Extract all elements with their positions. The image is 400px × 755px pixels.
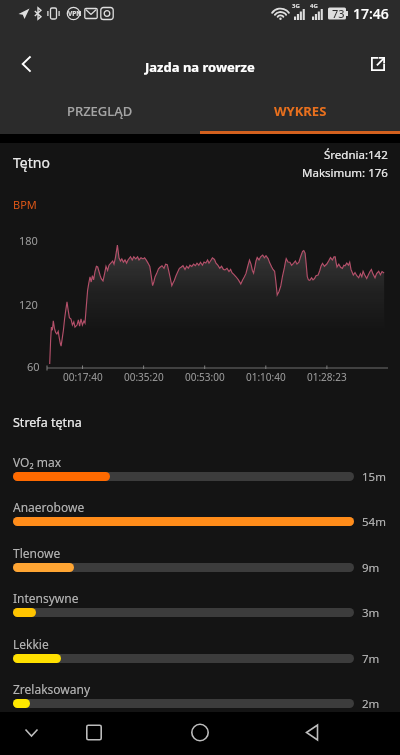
button[interactable]: WYKRES (200, 91, 400, 131)
button[interactable]: Lekkie (0, 636, 400, 680)
staticText: 180 (19, 233, 38, 248)
button[interactable]: Home (178, 712, 223, 755)
button[interactable]: Share (356, 42, 400, 86)
staticText: PRZEGLĄD (67, 102, 133, 120)
staticText: WYKRES (274, 102, 327, 120)
staticText: 7m (362, 651, 380, 667)
staticText: 4G (310, 2, 318, 10)
button[interactable]: Back (4, 42, 48, 86)
button[interactable]: VO₂ max (0, 454, 400, 498)
staticText: 73 (332, 6, 345, 21)
staticText: BPM (13, 197, 37, 212)
button[interactable]: Recent apps (71, 712, 116, 755)
staticText: 54m (362, 514, 386, 530)
staticText: 3m (362, 605, 380, 621)
staticText: 15m (362, 469, 386, 485)
staticText: 2m (362, 696, 380, 712)
staticText: VO₂ max (13, 454, 62, 470)
staticText: 00:17:40 (63, 370, 103, 384)
button[interactable]: Tlenowe (0, 545, 400, 589)
staticText: 9m (362, 560, 380, 576)
staticText: Maksimum: 176 (302, 165, 388, 181)
staticText: VPN (68, 9, 82, 18)
staticText: 01:28:23 (307, 370, 347, 384)
staticText: 120 (19, 297, 38, 312)
staticText: Średnia:142 (324, 147, 388, 163)
staticText: 00:35:20 (124, 370, 164, 384)
staticText: Jazda na rowerze (145, 58, 255, 76)
staticText: 17:46 (353, 4, 389, 23)
staticText: 3G (292, 2, 300, 10)
button[interactable]: PRZEGLĄD (0, 91, 200, 131)
staticText: Intensywne (13, 590, 79, 606)
staticText: Anaerobowe (13, 499, 85, 515)
button[interactable]: Intensywne (0, 590, 400, 634)
button[interactable]: Back (290, 712, 335, 755)
staticText: 00:53:00 (185, 370, 225, 384)
button[interactable]: Zrelaksowany (0, 681, 400, 725)
staticText: Tlenowe (13, 545, 61, 561)
staticText: Strefa tętna (13, 414, 82, 431)
staticText: Tętno (13, 153, 50, 172)
staticText: 60 (27, 359, 40, 374)
staticText: 01:10:40 (246, 370, 286, 384)
button[interactable]: Anaerobowe (0, 499, 400, 543)
staticText: Zrelaksowany (13, 681, 91, 697)
staticText: Lekkie (13, 636, 49, 652)
button[interactable]: Back (9, 712, 54, 755)
